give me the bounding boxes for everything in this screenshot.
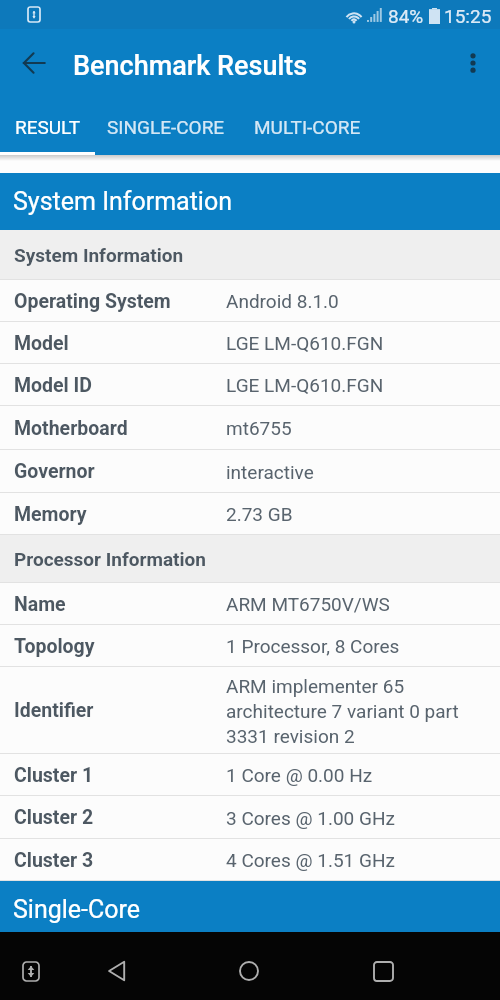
button[interactable]: Back — [10, 39, 58, 87]
button[interactable]: Governor — [0, 450, 500, 493]
button[interactable]: Back — [95, 949, 139, 993]
staticText: 2.73 GB — [226, 503, 293, 525]
button[interactable]: Motherboard — [0, 406, 500, 450]
staticText: LGE LM-Q610.FGN — [226, 332, 384, 354]
staticText: Motherboard — [14, 417, 226, 440]
button[interactable]: System Information — [0, 173, 500, 230]
staticText: Model — [14, 332, 226, 355]
button[interactable]: Rotate screen — [9, 949, 53, 993]
staticText: Android 8.1.0 — [226, 290, 339, 312]
button[interactable]: More options — [449, 39, 497, 87]
staticText: ARM implementer 65 architecture 7 varian… — [226, 675, 459, 747]
staticText: Memory — [14, 503, 226, 526]
staticText: mt6755 — [226, 417, 292, 439]
staticText: Name — [14, 593, 226, 616]
staticText: 3 Cores @ 1.00 GHz — [226, 807, 395, 829]
button[interactable]: Recent apps — [361, 949, 405, 993]
staticText: Processor Information — [14, 548, 206, 570]
button[interactable]: MULTI-CORE — [237, 103, 377, 155]
button[interactable]: Cluster 1 — [0, 754, 500, 796]
staticText: Governor — [14, 460, 226, 483]
button[interactable]: Home — [227, 949, 271, 993]
staticText: Benchmark Results — [73, 50, 308, 82]
staticText: LGE LM-Q610.FGN — [226, 374, 384, 396]
staticText: MULTI-CORE — [254, 116, 361, 138]
staticText: SINGLE-CORE — [107, 116, 225, 138]
button[interactable]: SINGLE-CORE — [95, 103, 237, 155]
staticText: Identifier — [14, 699, 226, 722]
staticText: Model ID — [14, 374, 226, 397]
staticText: RESULT — [15, 116, 81, 138]
staticText: 84% — [388, 5, 424, 27]
staticText: interactive — [226, 461, 314, 483]
staticText: ARM MT6750V/WS — [226, 593, 390, 615]
button[interactable]: Topology — [0, 625, 500, 667]
staticText: 1 Core @ 0.00 Hz — [226, 764, 373, 786]
staticText: System Information — [13, 187, 233, 216]
button[interactable]: Name — [0, 583, 500, 625]
button[interactable]: RESULT — [0, 103, 95, 155]
staticText: Cluster 2 — [14, 806, 226, 829]
button[interactable]: Identifier — [0, 667, 500, 754]
button[interactable]: Memory — [0, 493, 500, 535]
staticText: 15:25 — [444, 5, 492, 27]
staticText: Cluster 3 — [14, 849, 226, 872]
staticText: 1 Processor, 8 Cores — [226, 635, 400, 657]
staticText: Cluster 1 — [14, 764, 226, 787]
staticText: Operating System — [14, 290, 226, 313]
button[interactable]: Model — [0, 322, 500, 364]
button[interactable]: Cluster 2 — [0, 796, 500, 839]
button[interactable]: Model ID — [0, 364, 500, 406]
button[interactable]: Operating System — [0, 280, 500, 322]
staticText: Single-Core — [13, 895, 141, 924]
button[interactable]: Single-Core — [0, 881, 500, 938]
button[interactable]: Cluster 3 — [0, 839, 500, 881]
staticText: System Information — [14, 244, 184, 266]
staticText: Topology — [14, 635, 226, 658]
staticText: 4 Cores @ 1.51 GHz — [226, 849, 395, 871]
